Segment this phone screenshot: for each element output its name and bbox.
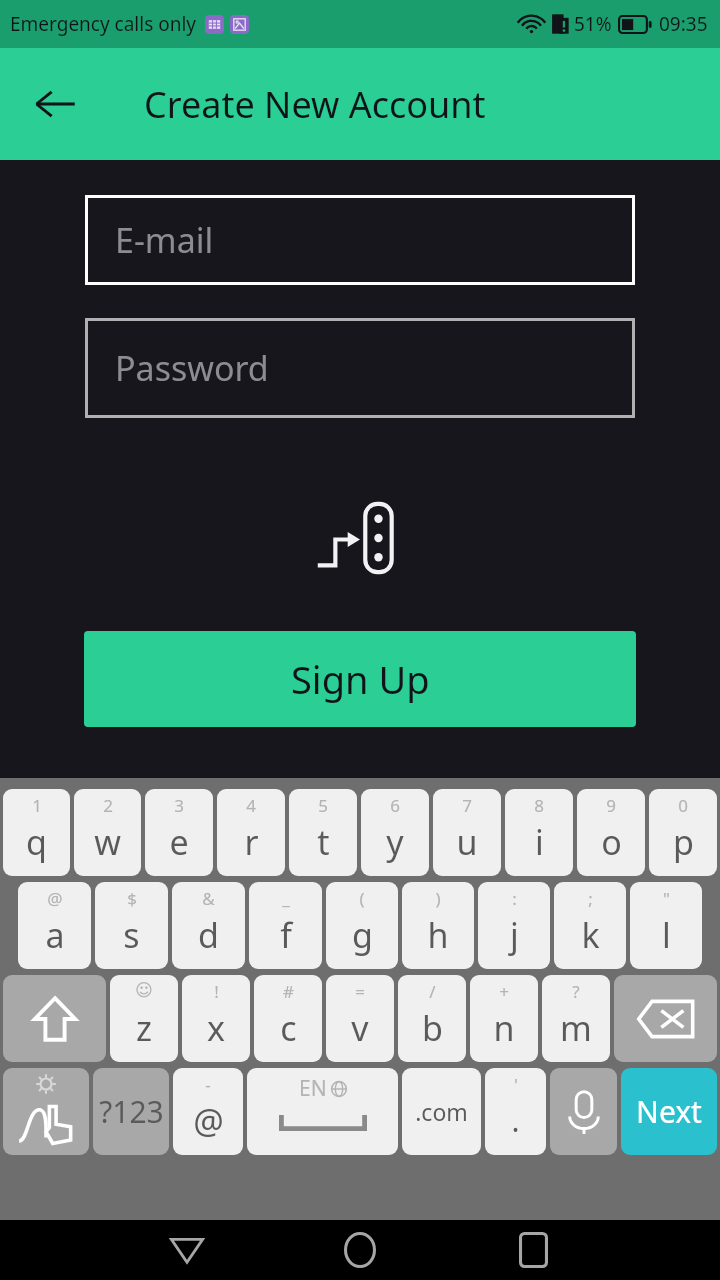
button[interactable]: Space bbox=[247, 1068, 398, 1155]
button[interactable]: & bbox=[172, 882, 245, 969]
staticText: Create New Account bbox=[144, 80, 486, 129]
staticText: 0 bbox=[678, 794, 688, 817]
staticText: u bbox=[456, 819, 478, 865]
button[interactable]: 4 bbox=[217, 789, 285, 876]
button[interactable]: Recents bbox=[485, 1220, 581, 1280]
staticText: 09:35 bbox=[659, 11, 708, 37]
staticText: 1 bbox=[32, 794, 42, 817]
button[interactable]: Back bbox=[22, 71, 88, 137]
staticText: r bbox=[244, 819, 259, 865]
button[interactable]: _ bbox=[249, 882, 322, 969]
staticText: _ bbox=[282, 887, 290, 910]
button[interactable]: .com bbox=[402, 1068, 481, 1155]
button[interactable]: 5 bbox=[289, 789, 357, 876]
staticText: # bbox=[283, 980, 294, 1003]
button[interactable]: 3 bbox=[145, 789, 213, 876]
staticText: + bbox=[499, 980, 509, 1003]
staticText: z bbox=[136, 1005, 152, 1051]
staticText: m bbox=[560, 1005, 592, 1051]
staticText: l bbox=[662, 912, 671, 958]
staticText: 9 bbox=[606, 794, 616, 817]
staticText: ! bbox=[214, 980, 219, 1003]
staticText: & bbox=[202, 887, 215, 910]
staticText: 6 bbox=[390, 794, 400, 817]
button[interactable]: # bbox=[254, 975, 322, 1062]
staticText: : bbox=[512, 887, 517, 910]
button[interactable]: 2 bbox=[74, 789, 141, 876]
button[interactable]: 9 bbox=[577, 789, 645, 876]
staticText: @ bbox=[47, 887, 63, 910]
button[interactable]: 8 bbox=[505, 789, 573, 876]
staticText: v bbox=[351, 1005, 369, 1051]
button[interactable]: ( bbox=[326, 882, 398, 969]
button[interactable]: ! bbox=[182, 975, 250, 1062]
staticText: 51% bbox=[574, 11, 612, 37]
staticText: q bbox=[26, 819, 47, 865]
button[interactable]: Back bbox=[139, 1220, 235, 1280]
button[interactable]: " bbox=[630, 882, 702, 969]
staticText: . bbox=[511, 1100, 520, 1141]
staticText: a bbox=[45, 912, 65, 958]
staticText: 3 bbox=[174, 794, 184, 817]
button[interactable]: - bbox=[173, 1068, 243, 1155]
button[interactable]: 1 bbox=[3, 789, 70, 876]
staticText: c bbox=[280, 1005, 297, 1051]
button[interactable]: : bbox=[478, 882, 550, 969]
button[interactable]: ?123 bbox=[93, 1068, 169, 1155]
staticText: " bbox=[663, 887, 670, 910]
staticText: x bbox=[207, 1005, 225, 1051]
staticText: ? bbox=[572, 980, 580, 1003]
staticText: t bbox=[317, 819, 330, 865]
staticText: e bbox=[169, 819, 189, 865]
staticText: Sign Up bbox=[291, 653, 430, 705]
staticText: .com bbox=[415, 1096, 468, 1127]
button[interactable]: ) bbox=[402, 882, 474, 969]
button[interactable]: @ bbox=[18, 882, 91, 969]
staticText: = bbox=[355, 980, 365, 1003]
button[interactable]: Handwriting bbox=[3, 1068, 89, 1155]
staticText: n bbox=[493, 1005, 515, 1051]
button[interactable]: Shift bbox=[3, 975, 106, 1062]
button[interactable]: Sign Up bbox=[84, 631, 636, 727]
staticText: / bbox=[429, 980, 436, 1003]
staticText: 8 bbox=[534, 794, 544, 817]
staticText: p bbox=[673, 819, 694, 865]
button[interactable]: ' bbox=[485, 1068, 546, 1155]
staticText: f bbox=[280, 912, 292, 958]
button[interactable]: ? bbox=[542, 975, 610, 1062]
staticText: $ bbox=[127, 887, 137, 910]
button[interactable]: 0 bbox=[649, 789, 717, 876]
staticText: ' bbox=[514, 1073, 518, 1096]
staticText: k bbox=[581, 912, 600, 958]
button[interactable]: = bbox=[326, 975, 394, 1062]
button[interactable]: $ bbox=[95, 882, 168, 969]
staticText: ?123 bbox=[99, 1091, 164, 1132]
staticText: ) bbox=[435, 887, 441, 910]
button[interactable]: + bbox=[470, 975, 538, 1062]
staticText: i bbox=[535, 819, 544, 865]
staticText: d bbox=[198, 912, 219, 958]
button[interactable]: / bbox=[398, 975, 466, 1062]
staticText: ( bbox=[359, 887, 365, 910]
button[interactable]: 7 bbox=[433, 789, 501, 876]
button[interactable]: Next bbox=[621, 1068, 717, 1155]
staticText: - bbox=[205, 1073, 211, 1096]
staticText: E-mail bbox=[115, 217, 214, 263]
staticText: Emergency calls only bbox=[10, 11, 197, 37]
staticText: Password bbox=[115, 345, 269, 391]
staticText: 4 bbox=[246, 794, 256, 817]
staticText: h bbox=[427, 912, 449, 958]
button[interactable]: ; bbox=[554, 882, 626, 969]
button[interactable]: E-mail bbox=[85, 195, 635, 285]
button[interactable]: Backspace bbox=[614, 975, 717, 1062]
staticText: y bbox=[386, 819, 404, 865]
button[interactable]: ☺ bbox=[110, 975, 178, 1062]
staticText: @ bbox=[193, 1098, 224, 1144]
button[interactable]: Voice input bbox=[550, 1068, 617, 1155]
staticText: o bbox=[601, 819, 622, 865]
button[interactable]: Home bbox=[312, 1220, 408, 1280]
staticText: 5 bbox=[318, 794, 328, 817]
staticText: Next bbox=[636, 1091, 702, 1132]
button[interactable]: 6 bbox=[361, 789, 429, 876]
button[interactable]: Password bbox=[85, 318, 635, 418]
